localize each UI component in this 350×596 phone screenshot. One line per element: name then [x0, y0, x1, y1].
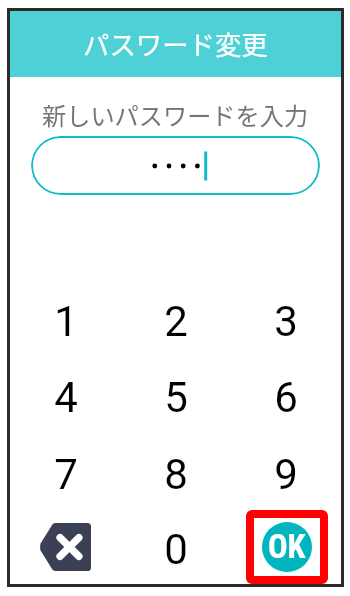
button[interactable]: 3 — [231, 284, 341, 358]
staticText: 9 — [274, 450, 298, 499]
staticText: 0 — [164, 525, 188, 574]
button[interactable] — [31, 136, 320, 195]
staticText: パスワード変更 — [83, 24, 268, 62]
button[interactable]: 1 — [10, 284, 121, 358]
staticText: 3 — [274, 297, 298, 346]
button[interactable]: 9 — [231, 437, 341, 511]
button[interactable]: OK — [246, 510, 328, 584]
staticText: 5 — [164, 373, 188, 422]
staticText: 4 — [54, 373, 78, 422]
button[interactable]: 7 — [10, 437, 121, 511]
button[interactable]: 5 — [121, 360, 231, 434]
button[interactable]: 6 — [231, 360, 341, 434]
staticText: 7 — [54, 450, 78, 499]
button[interactable]: 2 — [121, 284, 231, 358]
button[interactable]: 4 — [10, 360, 121, 434]
button[interactable]: Delete — [40, 523, 91, 571]
button[interactable]: 8 — [121, 437, 231, 511]
staticText: 2 — [164, 297, 188, 346]
staticText: OK — [268, 528, 306, 566]
staticText: 8 — [164, 450, 188, 499]
staticText: 6 — [274, 373, 298, 422]
button[interactable]: 0 — [121, 512, 231, 586]
staticText: 1 — [54, 297, 78, 346]
staticText: 新しいパスワードを入力 — [42, 97, 309, 132]
